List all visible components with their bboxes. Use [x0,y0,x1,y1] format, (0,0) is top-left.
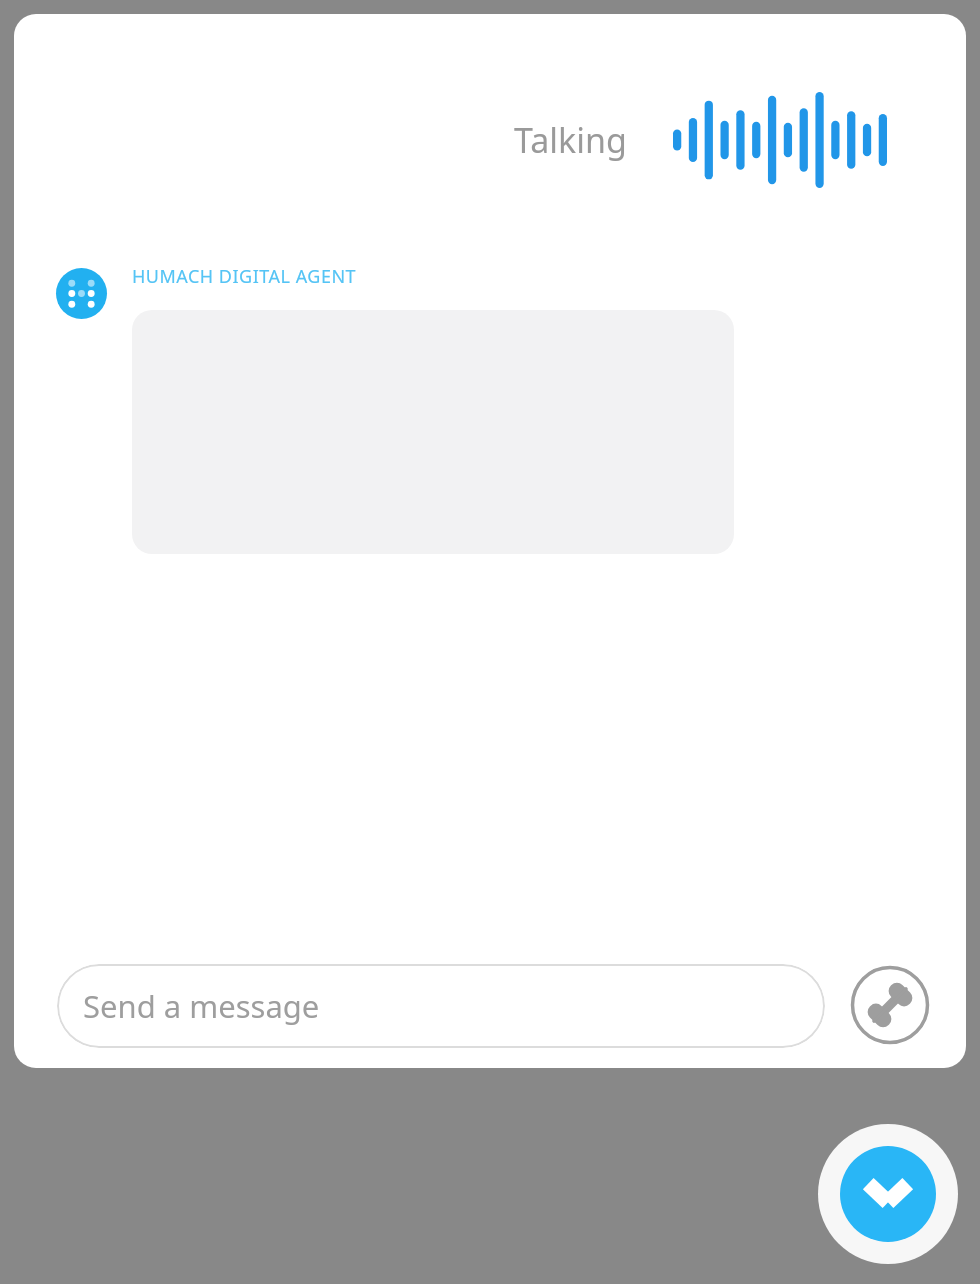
button[interactable]: End call [850,965,930,1045]
staticText: Send a message [83,985,320,1027]
button[interactable]: Minimize chat [818,1124,958,1264]
staticText: HUMACH DIGITAL AGENT [132,264,357,289]
button[interactable]: Humach digital agent avatar [42,254,120,332]
button[interactable]: Send a message [57,964,825,1048]
staticText: Talking [514,117,627,163]
